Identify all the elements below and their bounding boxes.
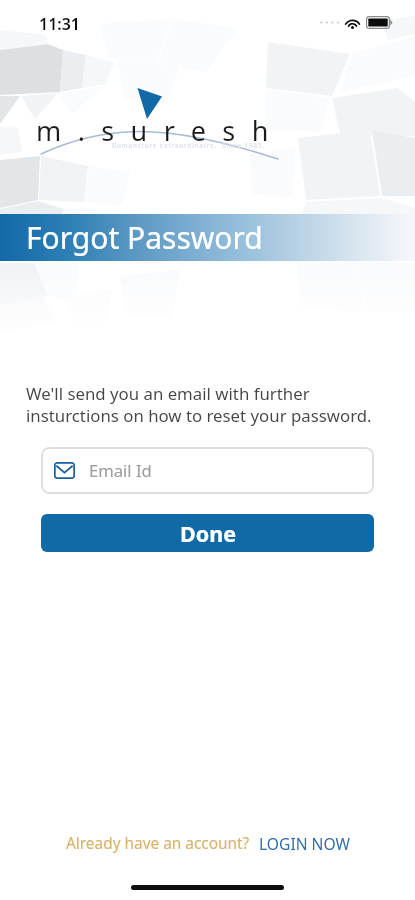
staticText: 11:31 bbox=[39, 13, 81, 35]
staticText: m.suresh bbox=[36, 112, 285, 149]
button[interactable]: LOGIN NOW bbox=[259, 833, 350, 854]
staticText: Email Id bbox=[89, 459, 152, 482]
button[interactable]: Done bbox=[41, 514, 374, 552]
staticText: Forgot Password bbox=[26, 217, 263, 258]
staticText: Already have an account? bbox=[66, 833, 250, 854]
staticText: Done bbox=[180, 519, 236, 548]
staticText: We'll send you an email with further ins… bbox=[26, 382, 415, 427]
staticText: Bumanstore extraordinaire. Since 1985. bbox=[112, 141, 266, 149]
button[interactable]: Email Id bbox=[41, 447, 374, 494]
staticText: LOGIN NOW bbox=[259, 833, 350, 854]
